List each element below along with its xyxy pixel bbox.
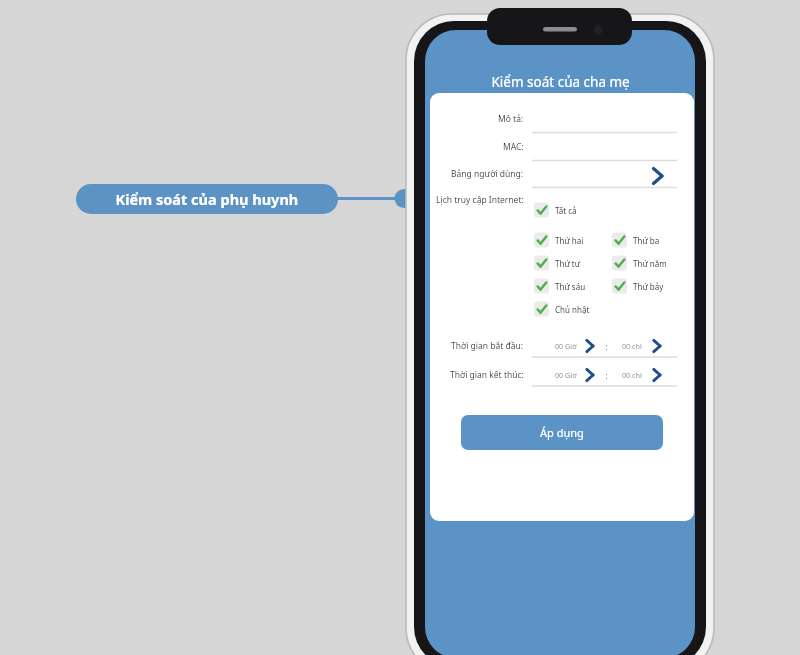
button[interactable]: Thứ bảy	[612, 278, 674, 294]
button[interactable]: Thứ hai	[534, 232, 596, 248]
button[interactable]: Thứ năm	[612, 255, 674, 271]
button[interactable]: Tăng giá trị	[586, 338, 598, 354]
button[interactable]: Thứ sáu	[534, 278, 596, 294]
button[interactable]: Tất cả	[534, 202, 596, 218]
button[interactable]	[76, 184, 338, 214]
button[interactable]: Tăng giá trị	[586, 367, 598, 383]
button[interactable]: Thứ ba	[612, 232, 674, 248]
button[interactable]	[461, 415, 663, 450]
button[interactable]: Tăng giá trị	[653, 338, 665, 354]
button[interactable]: Thứ tư	[534, 255, 596, 271]
button[interactable]: Chủ nhật	[534, 301, 596, 317]
button[interactable]: Tăng giá trị	[653, 367, 665, 383]
button[interactable]: Bảng người dùng	[532, 166, 677, 184]
